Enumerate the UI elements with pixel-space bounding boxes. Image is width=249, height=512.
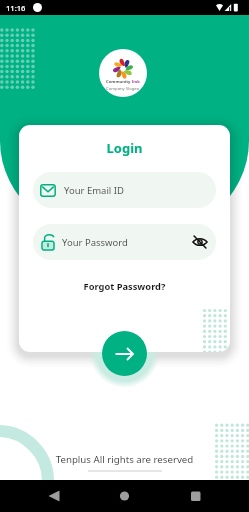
staticText: Community xyxy=(106,79,132,85)
staticText: Tenplus All rights are reserved xyxy=(0,453,249,466)
button[interactable]: Your Email ID xyxy=(33,172,216,208)
staticText: Company Slogan xyxy=(106,86,140,92)
button[interactable]: Forgot Password? xyxy=(19,280,230,293)
button[interactable]: Toggle password visibility xyxy=(187,229,213,255)
button[interactable]: Login xyxy=(102,331,147,376)
staticText: Your Password xyxy=(62,236,128,249)
staticText: link xyxy=(132,79,140,85)
button[interactable]: Your Password xyxy=(33,224,216,260)
staticText: 11:16 xyxy=(6,3,26,13)
staticText: Login xyxy=(19,139,230,157)
staticText: Your Email ID xyxy=(64,184,124,197)
